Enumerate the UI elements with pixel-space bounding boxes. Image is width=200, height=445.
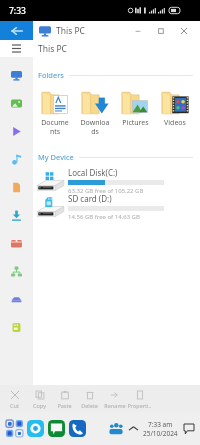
button[interactable]: Documents: [0, 173, 33, 201]
button[interactable]: Back: [0, 21, 33, 40]
button[interactable]: SD card (D:): [33, 193, 200, 219]
staticText: Properti...: [127, 402, 152, 409]
button[interactable]: Notifications: [181, 415, 197, 442]
button[interactable]: Minimize: [126, 21, 149, 40]
staticText: 14.56 GB free of 14.63 GB: [68, 213, 140, 219]
staticText: 63.32 GB free of 105.22 GB: [68, 187, 144, 193]
button[interactable]: Phone: [67, 415, 88, 442]
staticText: SD card (D:): [68, 193, 112, 204]
staticText: My Device: [38, 152, 74, 162]
button[interactable]: Restore: [149, 21, 172, 40]
button[interactable]: Videos: [155, 85, 195, 128]
button[interactable]: Desktop: [0, 61, 33, 89]
button[interactable]: Paste: [52, 385, 77, 412]
button[interactable]: Local Disk(C:): [33, 167, 200, 193]
staticText: Paste: [57, 402, 72, 409]
staticText: This PC: [56, 25, 85, 37]
button[interactable]: Messages: [46, 415, 67, 442]
staticText: Rename: [104, 402, 126, 409]
button[interactable]: Recycle Bin: [0, 229, 33, 257]
staticText: 7:33 am: [148, 420, 173, 429]
staticText: Docume nts: [41, 118, 69, 136]
staticText: 7:33: [9, 5, 26, 17]
button[interactable]: Cut: [2, 385, 27, 412]
staticText: Cut: [10, 402, 19, 409]
button[interactable]: Storage: [0, 313, 33, 341]
staticText: 25/10/2024: [143, 429, 178, 438]
staticText: Pictures: [122, 118, 149, 128]
staticText: Folders: [38, 70, 64, 80]
staticText: This PC: [38, 43, 67, 55]
button[interactable]: Videos: [0, 117, 33, 145]
button[interactable]: Downloa ds: [75, 85, 115, 136]
staticText: Copy: [33, 402, 46, 409]
button[interactable]: Pictures: [115, 85, 155, 128]
button[interactable]: Docume nts: [35, 85, 75, 136]
button[interactable]: Start: [4, 415, 25, 442]
button[interactable]: Music: [0, 145, 33, 173]
button[interactable]: Rename: [102, 385, 127, 412]
button[interactable]: Close: [172, 21, 195, 40]
button[interactable]: Properti...: [127, 385, 152, 412]
staticText: Local Disk(C:): [68, 167, 118, 178]
button[interactable]: Delete: [77, 385, 102, 412]
staticText: Videos: [164, 118, 186, 128]
button[interactable]: Camera: [25, 415, 46, 442]
button[interactable]: Menu: [0, 40, 33, 57]
button[interactable]: Downloads: [0, 201, 33, 229]
button[interactable]: Network: [0, 257, 33, 285]
button[interactable]: Show hidden icons: [125, 415, 141, 442]
staticText: Downloa ds: [80, 118, 110, 136]
button[interactable]: Pictures: [0, 89, 33, 117]
button[interactable]: This PC: [0, 285, 33, 313]
button[interactable]: People: [107, 415, 125, 442]
button[interactable]: 7:33 am: [143, 420, 178, 438]
staticText: Delete: [81, 402, 98, 409]
button[interactable]: Copy: [27, 385, 52, 412]
